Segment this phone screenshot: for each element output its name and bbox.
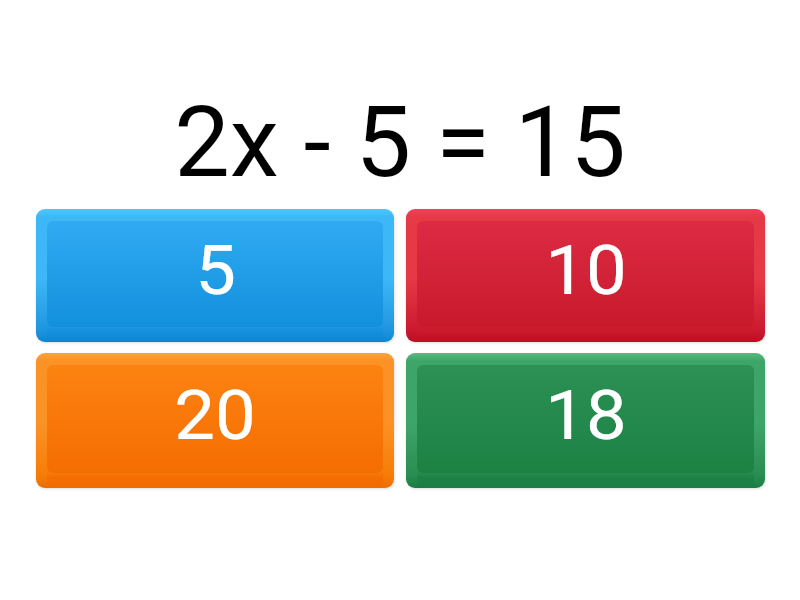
staticText: 2x - 5 = 15 (174, 84, 626, 200)
staticText: 20 (174, 375, 256, 456)
button[interactable]: 5 (36, 209, 394, 342)
button[interactable]: 18 (406, 353, 765, 488)
staticText: 5 (195, 230, 236, 311)
button[interactable]: 10 (406, 209, 765, 342)
button[interactable]: 20 (36, 353, 394, 488)
staticText: 18 (545, 375, 627, 456)
staticText: 10 (545, 230, 627, 311)
